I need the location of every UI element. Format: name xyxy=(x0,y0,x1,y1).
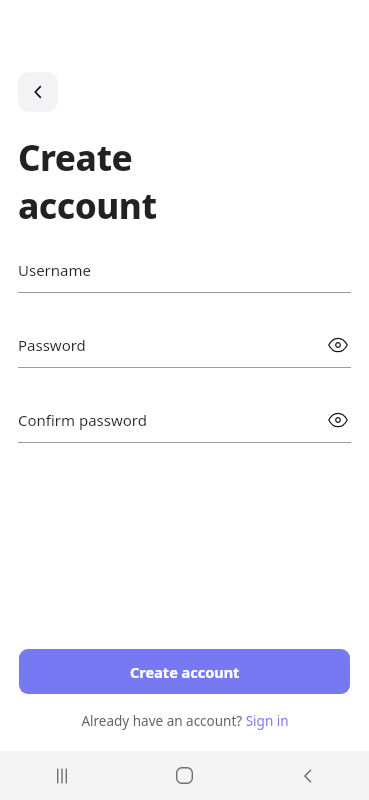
staticText: Create xyxy=(18,134,133,182)
staticText: Confirm password xyxy=(18,410,147,430)
staticText: Create account xyxy=(130,662,240,682)
staticText: account xyxy=(18,182,157,230)
button[interactable]: Create account xyxy=(19,649,350,694)
button[interactable]: Recent apps xyxy=(0,751,123,800)
staticText: Password xyxy=(18,335,86,355)
button[interactable]: Show password xyxy=(325,333,351,357)
button[interactable]: Show password xyxy=(325,408,351,432)
button[interactable]: Already have an account? Sign in xyxy=(81,712,289,730)
button[interactable]: Home xyxy=(123,751,246,800)
button[interactable]: Back xyxy=(18,72,58,112)
staticText: Username xyxy=(18,260,91,280)
button[interactable]: Back xyxy=(246,751,369,800)
